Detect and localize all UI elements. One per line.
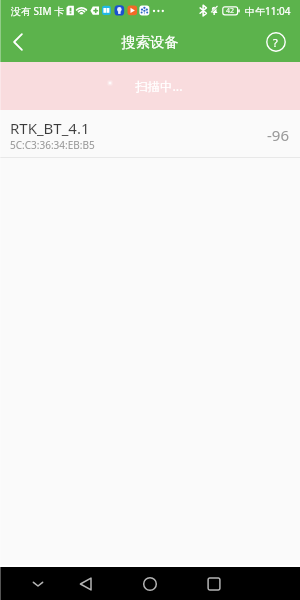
staticText: -96 xyxy=(267,125,289,145)
button[interactable]: Back xyxy=(70,568,102,600)
staticText: 中午11:04 xyxy=(245,4,291,18)
staticText: 42 xyxy=(226,6,235,16)
button[interactable]: Help xyxy=(251,22,300,62)
staticText: 搜索设备 xyxy=(121,33,179,51)
staticText: 5C:C3:36:34:EB:B5 xyxy=(10,138,95,152)
button[interactable]: Home xyxy=(134,568,166,600)
button[interactable]: Hide keyboard xyxy=(22,568,54,600)
button[interactable]: Back xyxy=(0,22,36,62)
staticText: ? xyxy=(273,35,278,50)
staticText: 没有 SIM 卡 xyxy=(11,4,65,18)
staticText: 扫描中... xyxy=(135,78,183,95)
staticText: RTK_BT_4.1 xyxy=(10,118,90,138)
button[interactable]: RTK_BT_4.1 xyxy=(0,110,300,158)
button[interactable]: Recents xyxy=(198,568,230,600)
